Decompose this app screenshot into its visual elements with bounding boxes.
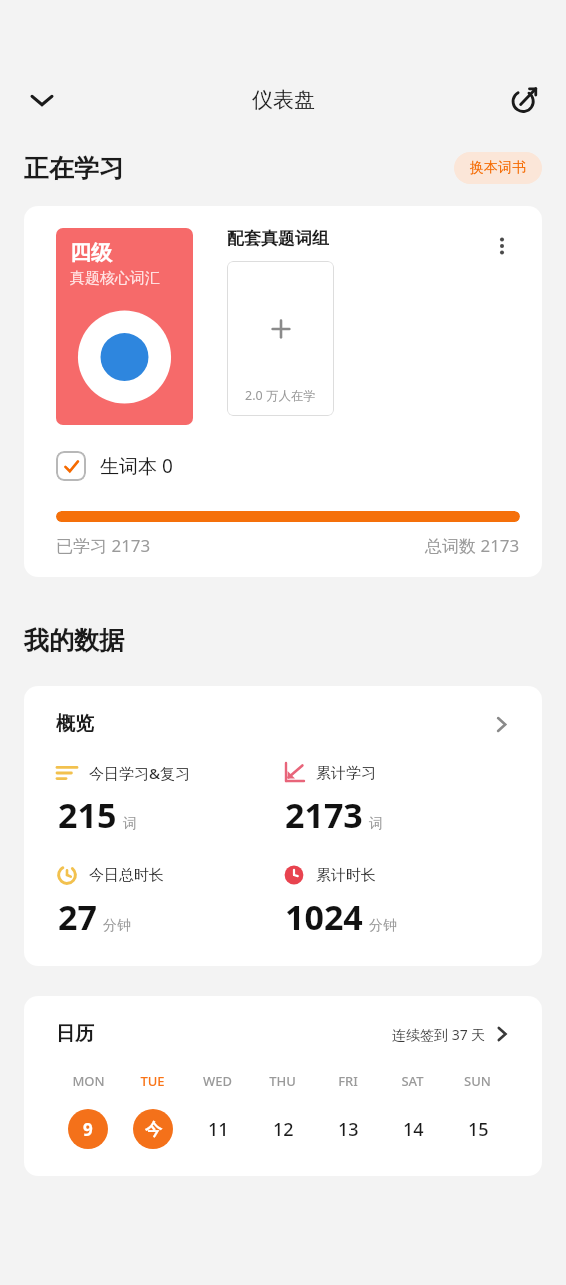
button[interactable]: 生词本 0 — [56, 451, 173, 481]
staticText: WED — [203, 1072, 232, 1090]
staticText: 正在学习 — [24, 153, 124, 184]
button[interactable]: 概览 — [56, 712, 510, 736]
staticText: 真题核心词汇 — [70, 269, 160, 288]
button[interactable]: 14 — [393, 1109, 433, 1149]
staticText: 今 — [145, 1119, 162, 1140]
staticText: SUN — [464, 1072, 491, 1090]
button[interactable]: 今 — [133, 1109, 173, 1149]
staticText: 仪表盘 — [252, 87, 315, 113]
staticText: 日历 — [56, 1022, 94, 1046]
button[interactable]: More options — [484, 228, 520, 264]
staticText: 分钟 — [369, 917, 397, 935]
staticText: 词 — [123, 815, 137, 833]
staticText: 换本词书 — [470, 159, 526, 177]
staticText: 累计时长 — [316, 866, 376, 885]
staticText: 今日总时长 — [89, 866, 164, 885]
staticText: 分钟 — [103, 917, 131, 935]
button[interactable]: 四级 — [56, 228, 193, 425]
staticText: 连续签到 37 天 — [392, 1025, 486, 1044]
button[interactable]: 今日总时长 — [56, 864, 283, 940]
button[interactable]: 9 — [68, 1109, 108, 1149]
staticText: 词 — [369, 815, 383, 833]
staticText: SAT — [401, 1072, 424, 1090]
staticText: 生词本 0 — [100, 453, 173, 479]
staticText: THU — [269, 1072, 296, 1090]
button[interactable]: Share — [500, 76, 548, 124]
staticText: 概览 — [56, 712, 94, 736]
staticText: 我的数据 — [24, 625, 124, 656]
staticText: 12 — [273, 1117, 294, 1142]
button[interactable]: 13 — [328, 1109, 368, 1149]
button[interactable]: Collapse — [18, 76, 66, 124]
staticText: 11 — [208, 1117, 229, 1142]
staticText: 总词数 2173 — [425, 534, 520, 557]
staticText: 15 — [468, 1117, 489, 1142]
staticText: 215 — [58, 792, 117, 838]
button[interactable]: 今日学习&复习 — [56, 762, 283, 838]
staticText: 配套真题词组 — [227, 228, 329, 249]
button[interactable]: 换本词书 — [454, 152, 542, 184]
button[interactable]: 2.0 万人在学 — [227, 261, 334, 416]
staticText: FRI — [338, 1072, 358, 1090]
button[interactable]: 11 — [198, 1109, 238, 1149]
button[interactable]: 累计学习 — [283, 762, 510, 838]
staticText: 9 — [83, 1118, 93, 1141]
staticText: TUE — [140, 1072, 165, 1090]
staticText: MON — [72, 1072, 105, 1090]
button[interactable]: 四级 — [24, 206, 542, 577]
staticText: 13 — [338, 1117, 359, 1142]
staticText: 1024 — [285, 894, 363, 940]
staticText: 27 — [58, 894, 97, 940]
button[interactable]: 12 — [263, 1109, 303, 1149]
staticText: 2.0 万人在学 — [245, 387, 316, 404]
staticText: 2173 — [285, 792, 363, 838]
staticText: 四级 — [70, 240, 112, 266]
staticText: 累计学习 — [316, 764, 376, 783]
staticText: 14 — [403, 1117, 424, 1142]
staticText: 已学习 2173 — [56, 534, 151, 557]
button[interactable]: 日历 — [56, 1022, 510, 1046]
button[interactable]: 15 — [458, 1109, 498, 1149]
button[interactable]: 累计时长 — [283, 864, 510, 940]
staticText: 今日学习&复习 — [89, 763, 191, 783]
